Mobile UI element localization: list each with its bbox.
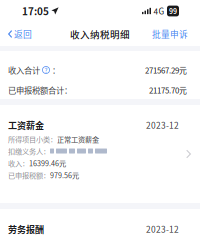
staticText: 收入合计 [8, 64, 40, 76]
button[interactable]: 工资薪金 [0, 105, 200, 203]
staticText: 17:05 [22, 4, 49, 18]
staticText: 2023-12 [146, 119, 179, 131]
button[interactable]: 返回 [3, 23, 37, 45]
staticText: 正常工资薪金 [57, 134, 99, 144]
staticText: 已申报税额： [8, 170, 50, 180]
button[interactable]: 批量申诉 [146, 23, 197, 45]
staticText: 已申报税额合计： [8, 84, 72, 96]
staticText: 返回 [14, 28, 32, 40]
staticText: 21175.70元 [149, 84, 187, 96]
staticText: 收入： [8, 158, 29, 168]
staticText: 劳务报酬 [8, 222, 44, 235]
staticText: 16399.46元 [29, 158, 66, 168]
staticText: 收入纳税明细 [70, 27, 130, 41]
staticText: 扣缴义务人： [8, 146, 50, 156]
staticText: 2023-12 [146, 223, 179, 235]
staticText: 工资薪金 [8, 118, 44, 131]
button[interactable]: 劳务报酬 [0, 209, 200, 240]
staticText: 所得项目小类： [8, 134, 57, 144]
staticText: 979.56元 [50, 170, 79, 180]
staticText: 4G [153, 5, 164, 17]
staticText: 271567.29元 [145, 64, 187, 76]
staticText: ： [52, 64, 60, 76]
staticText: 批量申诉 [152, 28, 188, 40]
staticText: ? [44, 65, 47, 75]
staticText: 99 [169, 6, 177, 16]
button[interactable]: 收入合计说明 [40, 66, 52, 73]
